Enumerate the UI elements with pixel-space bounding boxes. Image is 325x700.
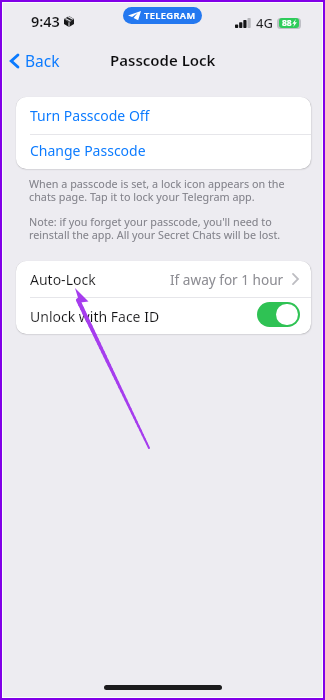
staticText: 88 — [282, 17, 292, 29]
staticText: Unlock with Face ID — [30, 307, 160, 326]
button[interactable]: Auto-Lock — [16, 261, 311, 297]
staticText: Turn Passcode Off — [30, 106, 150, 125]
staticText: When a passcode is set, a lock icon appe… — [29, 176, 285, 204]
staticText: Passcode Lock — [110, 50, 216, 70]
staticText: 4G — [256, 14, 273, 32]
staticText: Auto-Lock — [30, 270, 96, 289]
button[interactable]: TELEGRAM — [123, 7, 202, 24]
button[interactable]: Unlock with Face ID — [16, 298, 311, 334]
button[interactable]: Back — [3, 46, 70, 75]
staticText: Back — [25, 50, 60, 71]
staticText: Change Passcode — [30, 141, 146, 160]
staticText: TELEGRAM — [144, 9, 196, 22]
staticText: Note: if you forget your passcode, you'l… — [29, 214, 281, 242]
button[interactable]: Change Passcode — [16, 135, 311, 169]
button[interactable]: Turn Passcode Off — [16, 97, 311, 134]
staticText: 9:43 — [31, 11, 60, 31]
button[interactable]: Unlock with Face ID toggle, on — [257, 302, 300, 327]
staticText: If away for 1 hour — [170, 270, 284, 289]
